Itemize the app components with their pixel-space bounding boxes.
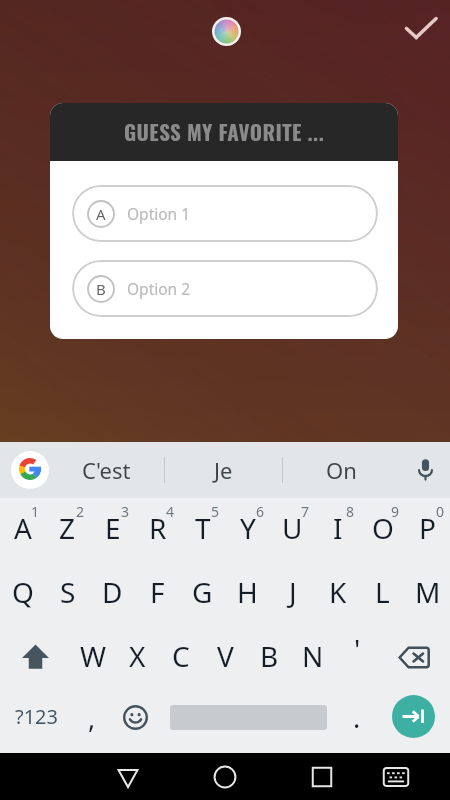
staticText: Option 2 bbox=[127, 278, 191, 299]
staticText: 5 bbox=[211, 502, 220, 521]
button[interactable]: Y bbox=[225, 498, 270, 562]
staticText: Option 1 bbox=[127, 203, 191, 224]
staticText: V bbox=[217, 637, 234, 675]
button[interactable]: Emoji bbox=[112, 690, 158, 743]
staticText: 3 bbox=[121, 502, 130, 521]
button[interactable]: Z bbox=[45, 498, 90, 562]
staticText: C'est bbox=[82, 455, 131, 485]
staticText: K bbox=[329, 573, 347, 611]
button[interactable]: Je bbox=[165, 442, 282, 498]
staticText: Q bbox=[12, 573, 34, 611]
button[interactable]: S bbox=[45, 562, 90, 626]
staticText: , bbox=[88, 699, 96, 736]
button[interactable]: A bbox=[0, 498, 45, 562]
button[interactable]: I bbox=[315, 498, 360, 562]
button[interactable]: Switch keyboard bbox=[365, 753, 427, 800]
staticText: A bbox=[96, 204, 106, 224]
staticText: ' bbox=[354, 630, 361, 668]
button[interactable]: X bbox=[115, 626, 159, 690]
staticText: I bbox=[333, 509, 343, 547]
staticText: 7 bbox=[301, 502, 310, 521]
staticText: O bbox=[372, 509, 394, 547]
staticText: . bbox=[353, 699, 361, 736]
staticText: L bbox=[375, 573, 390, 611]
button[interactable]: K bbox=[315, 562, 360, 626]
staticText: D bbox=[102, 573, 123, 611]
button[interactable]: Recents bbox=[291, 753, 353, 800]
staticText: 0 bbox=[436, 502, 445, 521]
button[interactable]: B bbox=[72, 260, 378, 317]
button[interactable]: Colour picker bbox=[212, 17, 241, 46]
staticText: Y bbox=[240, 509, 256, 547]
staticText: H bbox=[237, 573, 258, 611]
staticText: B bbox=[260, 637, 279, 675]
staticText: 2 bbox=[76, 502, 85, 521]
staticText: 6 bbox=[256, 502, 265, 521]
button[interactable]: B bbox=[247, 626, 291, 690]
staticText: 9 bbox=[391, 502, 400, 521]
button[interactable]: Q bbox=[0, 562, 45, 626]
staticText: ?123 bbox=[15, 703, 58, 730]
button[interactable]: D bbox=[90, 562, 135, 626]
button[interactable]: G bbox=[180, 562, 225, 626]
staticText: N bbox=[302, 637, 324, 675]
staticText: U bbox=[282, 509, 303, 547]
staticText: Je bbox=[214, 455, 233, 485]
staticText: S bbox=[60, 573, 76, 611]
button[interactable]: R bbox=[135, 498, 180, 562]
button[interactable]: U bbox=[270, 498, 315, 562]
staticText: X bbox=[129, 637, 146, 675]
button[interactable]: Backspace bbox=[379, 626, 450, 690]
staticText: T bbox=[195, 509, 211, 547]
staticText: W bbox=[80, 637, 107, 675]
staticText: 8 bbox=[346, 502, 355, 521]
button[interactable]: W bbox=[71, 626, 115, 690]
button[interactable]: O bbox=[360, 498, 405, 562]
staticText: E bbox=[105, 509, 121, 547]
staticText: On bbox=[326, 455, 357, 485]
staticText: G bbox=[192, 573, 213, 611]
button[interactable]: M bbox=[405, 562, 450, 626]
button[interactable]: Back bbox=[97, 753, 159, 800]
button[interactable]: F bbox=[135, 562, 180, 626]
staticText: F bbox=[150, 573, 165, 611]
button[interactable]: C bbox=[159, 626, 203, 690]
staticText: GUESS MY FAVORITE ... bbox=[124, 116, 325, 147]
button[interactable]: Google bbox=[11, 451, 49, 489]
staticText: 1 bbox=[31, 502, 40, 521]
staticText: B bbox=[96, 279, 106, 299]
button[interactable]: E bbox=[90, 498, 135, 562]
button[interactable]: C'est bbox=[48, 442, 164, 498]
button[interactable]: Shift bbox=[0, 626, 71, 690]
button[interactable]: L bbox=[360, 562, 405, 626]
button[interactable]: P bbox=[405, 498, 450, 562]
button[interactable]: H bbox=[225, 562, 270, 626]
staticText: Z bbox=[59, 509, 76, 547]
staticText: M bbox=[415, 573, 441, 611]
button[interactable]: Home bbox=[194, 753, 256, 800]
button[interactable]: ?123 bbox=[0, 690, 72, 743]
button[interactable]: . bbox=[335, 690, 376, 743]
staticText: 4 bbox=[166, 502, 175, 521]
staticText: J bbox=[289, 573, 297, 611]
staticText: P bbox=[419, 509, 436, 547]
button[interactable]: Done bbox=[404, 10, 442, 48]
button[interactable]: A bbox=[72, 185, 378, 242]
button[interactable]: On bbox=[283, 442, 400, 498]
button[interactable]: T bbox=[180, 498, 225, 562]
staticText: A bbox=[14, 509, 32, 547]
button[interactable]: ' bbox=[335, 626, 379, 690]
button[interactable]: J bbox=[270, 562, 315, 626]
button[interactable]: V bbox=[203, 626, 247, 690]
button[interactable]: N bbox=[291, 626, 335, 690]
button[interactable]: , bbox=[72, 690, 112, 743]
button[interactable]: Voice input bbox=[400, 442, 450, 498]
staticText: C bbox=[172, 637, 190, 675]
staticText: R bbox=[149, 509, 167, 547]
button[interactable]: Enter bbox=[392, 695, 435, 738]
